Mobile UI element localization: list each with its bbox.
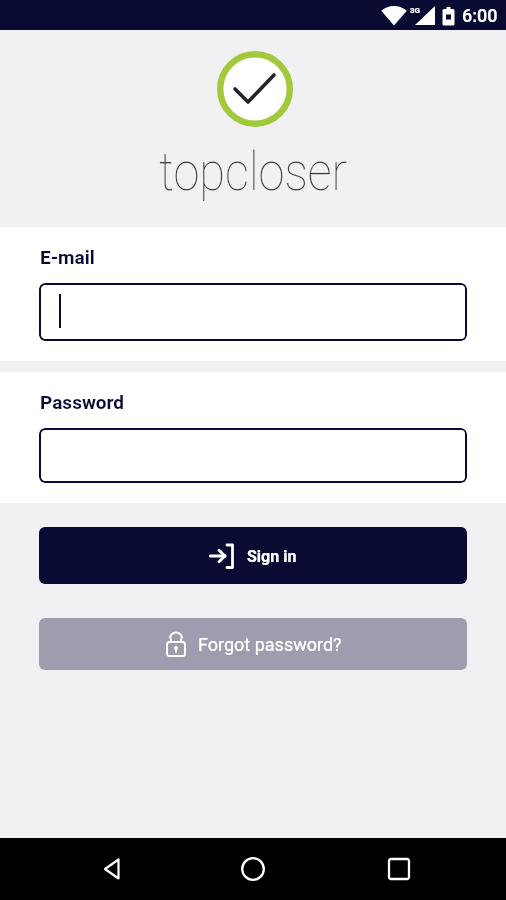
staticText: Sign in	[247, 547, 297, 566]
button[interactable]	[228, 844, 278, 894]
staticText: Forgot password?	[198, 634, 342, 655]
button[interactable]: Sign in	[39, 527, 467, 584]
staticText: topcloser	[159, 140, 348, 203]
button[interactable]	[374, 844, 424, 894]
button[interactable]	[88, 844, 138, 894]
button[interactable]	[39, 428, 467, 483]
staticText: E-mail	[40, 246, 95, 268]
staticText: 3G	[410, 6, 421, 15]
button[interactable]: Forgot password?	[39, 618, 467, 670]
staticText: Password	[40, 391, 125, 413]
staticText: 6:00	[462, 5, 498, 26]
button[interactable]	[39, 283, 467, 341]
